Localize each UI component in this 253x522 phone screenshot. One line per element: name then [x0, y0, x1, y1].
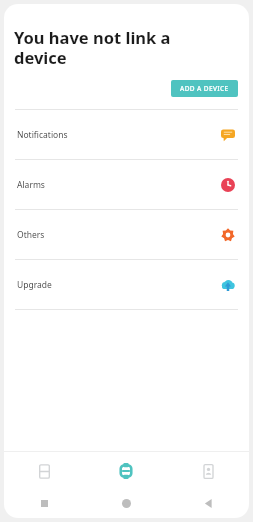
staticText: Upgrade [17, 279, 52, 291]
staticText: You have not link a device [14, 26, 171, 69]
button[interactable]: Journal [4, 452, 85, 490]
button[interactable]: Upgrade [4, 260, 249, 309]
button[interactable]: Device [85, 452, 167, 490]
staticText: Alarms [17, 179, 45, 191]
staticText: Notifications [17, 129, 68, 141]
button[interactable]: Others [4, 210, 249, 259]
button[interactable]: Notifications [4, 110, 249, 159]
staticText: ADD A DEVICE [180, 84, 229, 93]
button[interactable]: Alarms [4, 160, 249, 209]
staticText: Others [17, 229, 45, 241]
button[interactable]: ADD A DEVICE [171, 80, 238, 97]
button[interactable]: Profile [167, 452, 249, 490]
